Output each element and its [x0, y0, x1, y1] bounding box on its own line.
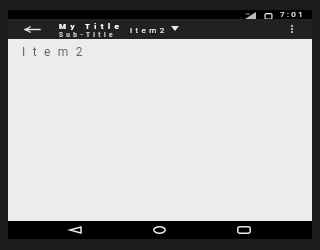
staticText: Sub-Title [59, 31, 116, 39]
button[interactable]: Item2 [130, 19, 179, 39]
button[interactable]: Home [147, 221, 171, 239]
staticText: 7:01 [280, 10, 306, 19]
button[interactable]: More options [281, 19, 303, 39]
staticText: Item2 [130, 26, 168, 35]
button[interactable]: Navigate up [22, 19, 42, 39]
button[interactable]: Recent apps [232, 221, 256, 239]
staticText: My Title [59, 22, 120, 31]
button[interactable]: Back [63, 221, 87, 239]
button[interactable]: Item2 [22, 45, 90, 59]
